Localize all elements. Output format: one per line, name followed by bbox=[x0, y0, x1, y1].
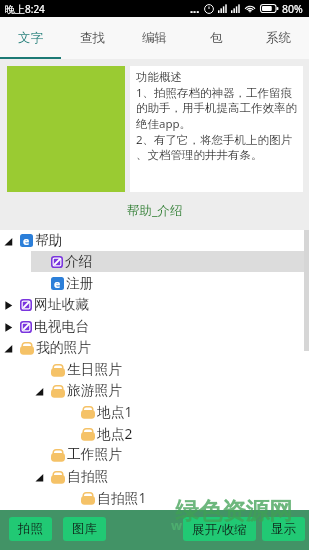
button[interactable]: 包 bbox=[185, 17, 247, 59]
staticText: 图库 bbox=[72, 521, 97, 537]
button[interactable]: e bbox=[0, 273, 309, 294]
button[interactable]: e bbox=[0, 230, 309, 251]
staticText: 80% bbox=[282, 2, 303, 16]
staticText: 文字 bbox=[18, 30, 43, 46]
button[interactable]: 系统 bbox=[247, 17, 309, 59]
staticText: w bbox=[171, 516, 183, 534]
button[interactable]: 我的照片 bbox=[0, 337, 309, 358]
staticText: 晚上8:24 bbox=[5, 2, 45, 16]
button[interactable]: 图库 bbox=[63, 517, 106, 541]
staticText: 绿色资源网 bbox=[175, 496, 293, 526]
button[interactable]: 工作照片 bbox=[0, 444, 309, 465]
staticText: 展开/收缩 bbox=[192, 521, 247, 538]
staticText: 帮助_介绍 bbox=[127, 202, 183, 219]
staticText: 介绍 bbox=[65, 253, 93, 270]
staticText: 旅游照片 bbox=[67, 382, 123, 399]
staticText: 地点1 bbox=[97, 402, 133, 421]
staticText: 编辑 bbox=[142, 30, 167, 46]
button[interactable]: 显示 bbox=[262, 517, 305, 541]
button[interactable]: 网址收藏 bbox=[0, 294, 309, 315]
staticText: 自拍照1 bbox=[97, 488, 147, 507]
staticText: 注册 bbox=[66, 275, 94, 292]
staticText: 地点2 bbox=[97, 424, 133, 443]
staticText: 功能概述 1、拍照存档的神器，工作留痕 的助手，用手机提高工作效率的 绝佳app… bbox=[136, 70, 297, 163]
staticText: 生日照片 bbox=[67, 361, 123, 378]
staticText: 显示 bbox=[271, 521, 296, 537]
staticText: 我的照片 bbox=[36, 339, 92, 356]
button[interactable]: 文字 bbox=[0, 17, 61, 59]
staticText: ... bbox=[190, 1, 200, 16]
staticText: 自拍照 bbox=[67, 468, 109, 485]
staticText: e bbox=[23, 234, 30, 247]
button[interactable]: 生日照片 bbox=[0, 359, 309, 380]
button[interactable]: 旅游照片 bbox=[0, 380, 309, 401]
button[interactable]: 拍照 bbox=[9, 517, 52, 541]
staticText: e bbox=[54, 277, 61, 290]
button[interactable]: 自拍照1 bbox=[0, 487, 309, 508]
button[interactable]: 查找 bbox=[61, 17, 123, 59]
staticText: 包 bbox=[210, 30, 223, 46]
button[interactable]: 电视电台 bbox=[0, 316, 309, 337]
staticText: 查找 bbox=[80, 30, 105, 46]
staticText: 电视电台 bbox=[34, 318, 90, 335]
button[interactable]: 展开/收缩 bbox=[183, 517, 256, 541]
staticText: 工作照片 bbox=[67, 446, 123, 463]
button[interactable]: 自拍照 bbox=[0, 466, 309, 487]
button[interactable]: 地点2 bbox=[0, 423, 309, 444]
staticText: 系统 bbox=[266, 30, 291, 46]
staticText: 网址收藏 bbox=[34, 296, 90, 313]
button[interactable]: 地点1 bbox=[0, 401, 309, 422]
staticText: 帮助 bbox=[35, 232, 63, 249]
button[interactable]: 编辑 bbox=[123, 17, 185, 59]
button[interactable]: 介绍 bbox=[0, 251, 309, 272]
staticText: 拍照 bbox=[18, 521, 43, 537]
